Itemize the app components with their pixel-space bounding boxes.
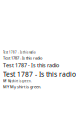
staticText: Test 1787 - Is this radio bbox=[3, 51, 36, 54]
staticText: MY My shirt is green. bbox=[3, 79, 32, 83]
staticText: Test 1787 - Is this radio bbox=[3, 70, 76, 78]
staticText: Test 1787 - Is this radio bbox=[3, 61, 59, 69]
staticText: MY My shirt is green. bbox=[3, 84, 41, 89]
staticText: Test 1787 - Is this radio bbox=[3, 55, 42, 60]
